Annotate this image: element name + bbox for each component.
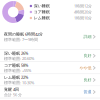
staticText: 良好 bbox=[83, 53, 91, 58]
staticText: 標準範囲: 20-60% bbox=[4, 56, 34, 61]
button[interactable]: コア睡眠 58% bbox=[0, 62, 100, 74]
button[interactable]: 詳細 bbox=[83, 34, 96, 39]
staticText: 覚醒 4回 bbox=[4, 87, 19, 92]
staticText: コア睡眠 bbox=[34, 9, 50, 14]
staticText: 合計 56 分 bbox=[4, 92, 22, 97]
staticText: 4時間20分 bbox=[74, 9, 92, 15]
staticText: 普通 bbox=[83, 89, 91, 94]
staticText: 1時間10分 bbox=[74, 15, 92, 21]
staticText: 標準範囲: 10-30% bbox=[4, 80, 34, 85]
staticText: 標準範囲: 7〜9時間 bbox=[4, 37, 38, 42]
staticText: 1時間12分 bbox=[74, 3, 92, 9]
staticText: 夜間の睡眠 6時間42分 bbox=[4, 31, 43, 37]
staticText: 標準範囲: +55% bbox=[4, 68, 31, 73]
staticText: レム睡眠 bbox=[34, 15, 50, 20]
staticText: レム睡眠 22% bbox=[4, 75, 28, 80]
button[interactable]: 覚醒 4回 bbox=[0, 86, 100, 98]
staticText: 深い睡眠 26% bbox=[4, 50, 28, 56]
staticText: 良好 bbox=[83, 77, 91, 82]
staticText: やや低 bbox=[79, 65, 91, 70]
button[interactable]: レム睡眠 22% bbox=[0, 74, 100, 86]
staticText: コア睡眠 58% bbox=[4, 62, 28, 68]
staticText: 深い睡眠 bbox=[34, 3, 50, 8]
button[interactable]: 深い睡眠 26% bbox=[0, 50, 100, 62]
staticText: 詳細 bbox=[83, 34, 91, 39]
